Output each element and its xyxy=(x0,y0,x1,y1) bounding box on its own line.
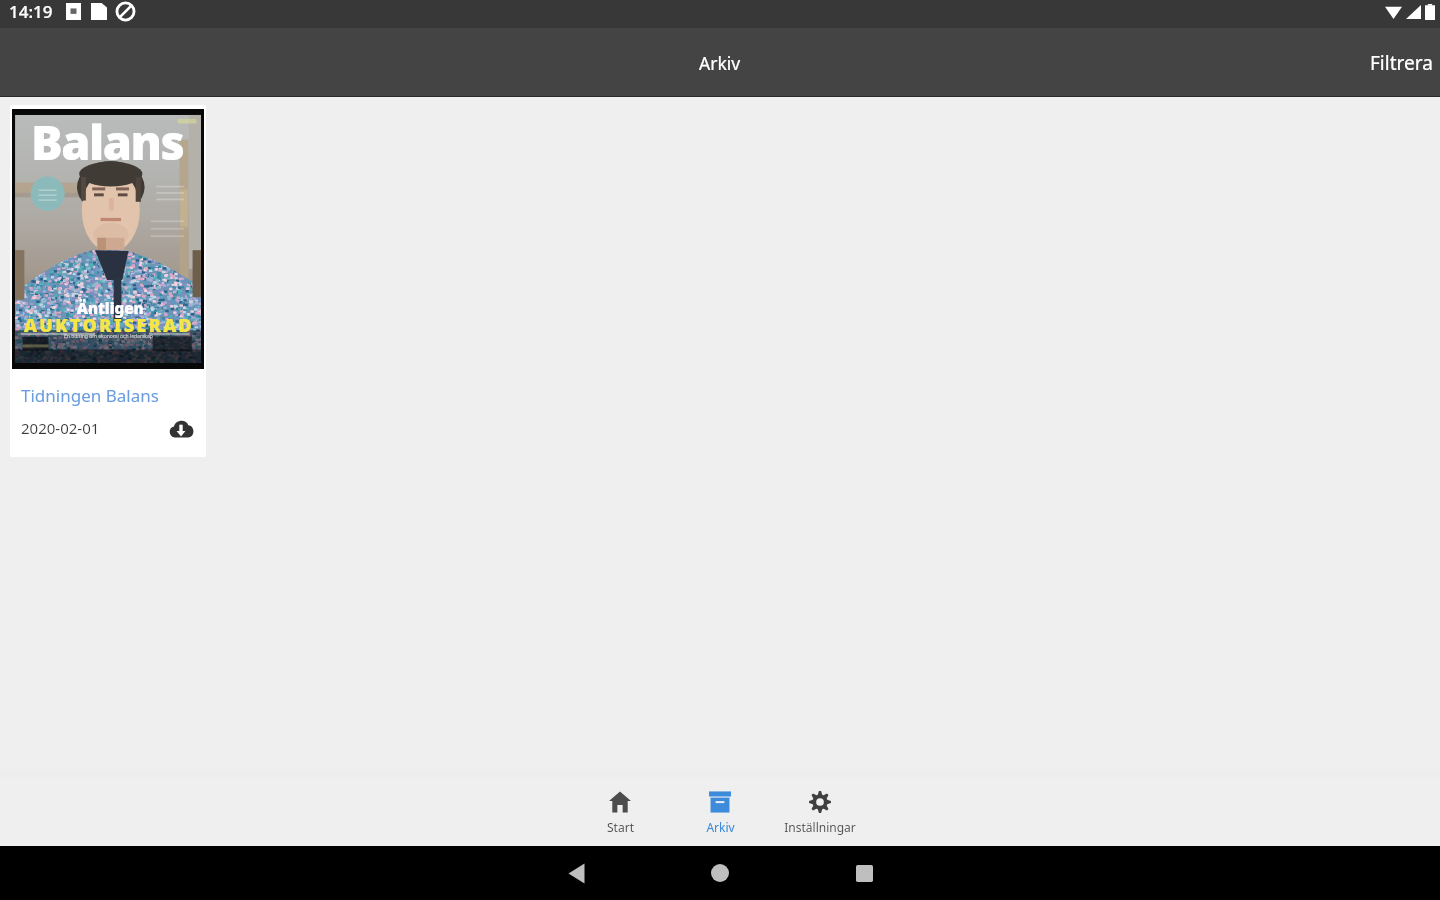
staticText: Start xyxy=(607,819,634,835)
staticText: Arkiv xyxy=(706,819,735,835)
button[interactable]: Recents xyxy=(792,846,936,900)
staticText: Filtrera xyxy=(1370,50,1433,76)
button[interactable]: Balans xyxy=(10,105,206,457)
button[interactable]: Filtrera xyxy=(1357,30,1440,96)
staticText: 14:19 xyxy=(9,0,53,23)
staticText: Tidningen Balans xyxy=(21,384,159,407)
button[interactable]: Start xyxy=(570,769,670,845)
button[interactable]: Home xyxy=(648,846,792,900)
button[interactable]: Ladda ner xyxy=(167,414,195,442)
staticText: En tidning om ekonomi och ledarskap xyxy=(64,333,153,340)
staticText: 2020-02-01 xyxy=(21,418,100,438)
button[interactable]: Arkiv xyxy=(670,769,770,845)
staticText: AUKTORISERAD xyxy=(24,313,195,338)
button[interactable]: Inställningar xyxy=(770,769,870,845)
staticText: Arkiv xyxy=(699,51,741,75)
button[interactable]: Back xyxy=(504,846,648,900)
staticText: Balans xyxy=(31,110,184,174)
staticText: Inställningar xyxy=(784,819,856,835)
staticText: Äntligen xyxy=(77,298,144,318)
